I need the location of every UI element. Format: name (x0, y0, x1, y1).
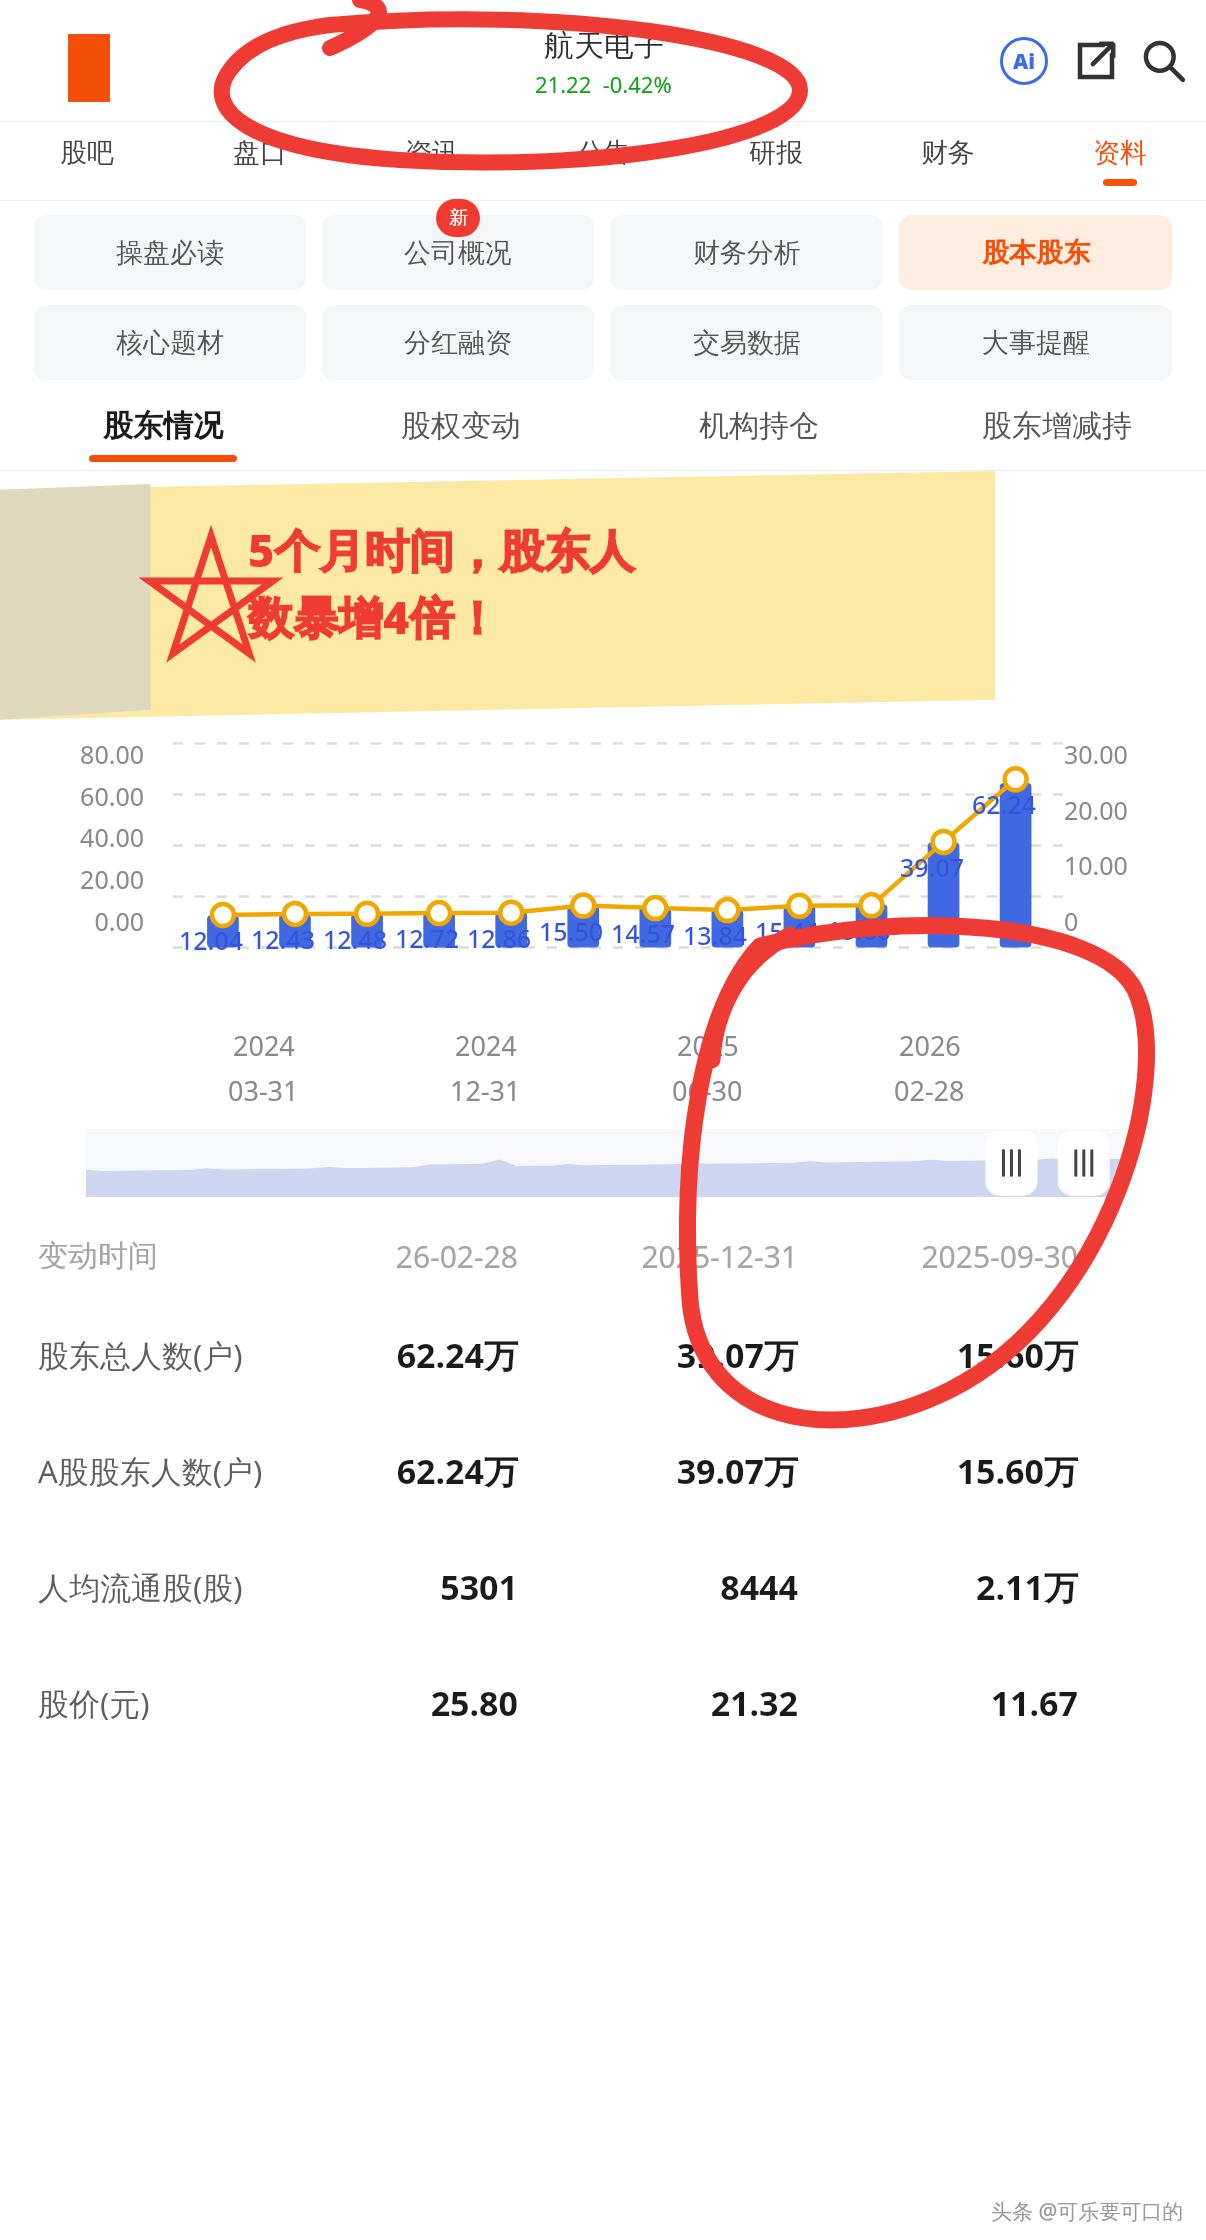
staticText: 15.60 (827, 913, 892, 947)
button[interactable]: 股东总人数(户) (0, 1297, 1206, 1413)
staticText: 62.24万 (268, 1332, 518, 1378)
staticText: 5个月时间，股东人 (248, 519, 635, 580)
button[interactable]: 股本股东 (899, 215, 1172, 290)
staticText: 26-02-28 (268, 1236, 518, 1277)
staticText: 06-30 (672, 1072, 743, 1109)
staticText: 39.07万 (518, 1448, 798, 1494)
button[interactable]: 资讯 (346, 122, 518, 200)
button[interactable]: 股东情况 (14, 398, 312, 470)
staticText: 0.00 (24, 904, 144, 938)
staticText: 0 (1064, 904, 1079, 938)
staticText: 操盘必读 (116, 236, 224, 270)
staticText: 股东增减持 (982, 407, 1132, 445)
button[interactable]: 股吧 (0, 122, 173, 200)
staticText: 62.24万 (268, 1448, 518, 1494)
staticText: 15.44 (755, 914, 820, 948)
staticText: 80.00 (24, 737, 144, 771)
button[interactable]: 盘口 (173, 122, 346, 200)
button[interactable]: 财务分析 (610, 215, 883, 290)
staticText: 股本股东 (982, 236, 1090, 270)
staticText: 机构持仓 (699, 407, 819, 445)
button[interactable]: 机构持仓 (610, 398, 908, 470)
staticText: 股东总人数(户) (38, 1334, 268, 1376)
staticText: 财务分析 (693, 236, 801, 270)
staticText: 盘口 (233, 136, 287, 170)
staticText: 2024 (455, 1027, 517, 1064)
staticText: 股吧 (60, 136, 114, 170)
button[interactable]: AI assistant (996, 33, 1052, 89)
staticText: 2025-09-30 (798, 1236, 1078, 1277)
staticText: 2026 (899, 1027, 961, 1064)
staticText: 资料 (1093, 136, 1147, 170)
button[interactable]: 核心题材 (34, 305, 306, 380)
staticText: 03-31 (228, 1072, 299, 1109)
button[interactable]: 操盘必读 (34, 215, 306, 290)
staticText: 15.60万 (798, 1448, 1078, 1494)
button[interactable]: 公司概况 (322, 215, 594, 290)
staticText: 公告 (577, 136, 631, 170)
staticText: 5301 (268, 1564, 518, 1610)
button[interactable]: 财务 (862, 122, 1034, 200)
staticText: 资讯 (405, 136, 459, 170)
staticText: 39.07 (900, 850, 965, 884)
staticText: 25.80 (268, 1680, 518, 1726)
staticText: 12.72 (395, 921, 460, 955)
staticText: 12-31 (450, 1072, 521, 1109)
staticText: 航天电子 (544, 27, 664, 65)
button[interactable]: 分红融资 (322, 305, 594, 380)
staticText: 头条 @可乐要可口的 (991, 2197, 1184, 2226)
button[interactable]: 人均流通股(股) (0, 1529, 1206, 1645)
staticText: 20.00 (24, 862, 144, 896)
staticText: 30.00 (1064, 737, 1128, 771)
staticText: 10.00 (1064, 848, 1128, 882)
staticText: 2024 (233, 1027, 295, 1064)
staticText: 12.43 (251, 922, 316, 956)
staticText: 62.24 (972, 787, 1037, 821)
staticText: 变动时间 (38, 1237, 268, 1275)
button[interactable]: 股权变动 (312, 398, 610, 470)
staticText: 财务 (921, 136, 975, 170)
button[interactable]: 大事提醒 (899, 305, 1172, 380)
button[interactable]: A股股东人数(户) (0, 1413, 1206, 1529)
staticText: 02-28 (894, 1072, 965, 1109)
staticText: 研报 (749, 136, 803, 170)
staticText: 人均流通股(股) (38, 1566, 268, 1608)
staticText: 8444 (518, 1564, 798, 1610)
staticText: 60.00 (24, 779, 144, 813)
button[interactable]: 研报 (690, 122, 862, 200)
staticText: 数暴增4倍！ (248, 586, 500, 647)
staticText: 20.00 (1064, 793, 1128, 827)
staticText: 14.57 (611, 916, 676, 950)
staticText: 公司概况 (404, 236, 512, 270)
staticText: 15.60万 (798, 1332, 1078, 1378)
staticText: 股东情况 (103, 407, 223, 445)
staticText: 股价(元) (38, 1682, 268, 1724)
button[interactable]: 股东增减持 (908, 398, 1206, 470)
button[interactable]: Search (1136, 33, 1192, 89)
button[interactable]: 交易数据 (610, 305, 883, 380)
staticText: 股权变动 (401, 407, 521, 445)
staticText: 21.22 -0.42% (535, 69, 672, 99)
staticText: 21.32 (518, 1680, 798, 1726)
staticText: 2025 (677, 1027, 739, 1064)
button[interactable]: 资料 (1034, 122, 1206, 200)
staticText: 15.50 (539, 914, 604, 948)
staticText: A股股东人数(户) (38, 1450, 268, 1492)
staticText: 12.48 (323, 922, 388, 956)
staticText: 11.67 (798, 1680, 1078, 1726)
staticText: 交易数据 (693, 326, 801, 360)
staticText: 2.11万 (798, 1564, 1078, 1610)
button[interactable]: Share (1068, 33, 1124, 89)
staticText: 12.86 (467, 921, 532, 955)
staticText: 新 (449, 206, 468, 230)
button[interactable]: 公告 (518, 122, 690, 200)
button[interactable]: 股价(元) (0, 1645, 1206, 1761)
staticText: 39.07万 (518, 1332, 798, 1378)
staticText: 核心题材 (116, 326, 224, 360)
staticText: Ai (1013, 47, 1036, 76)
staticText: 13.84 (683, 918, 748, 952)
staticText: 大事提醒 (982, 326, 1090, 360)
staticText: 2025-12-31 (518, 1236, 798, 1277)
staticText: 12.04 (179, 923, 244, 957)
staticText: 分红融资 (404, 326, 512, 360)
